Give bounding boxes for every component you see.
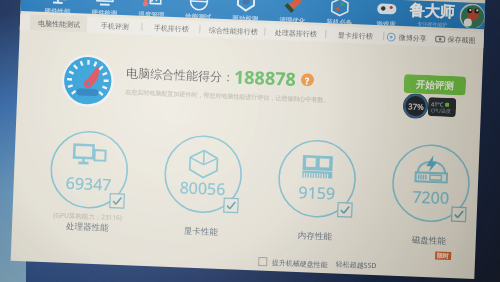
staticText: 内存性能 xyxy=(298,230,332,242)
button[interactable]: 微博分享 xyxy=(387,32,427,43)
staticText: 保存截图 xyxy=(447,35,476,45)
button[interactable]: 69347 xyxy=(45,129,132,252)
button[interactable]: CPU 使用率 37% xyxy=(403,93,429,119)
staticText: 7200 xyxy=(412,185,450,209)
button[interactable]: 处理器排行榜 xyxy=(265,24,326,42)
staticText: 硬件性能 xyxy=(44,7,71,13)
staticText: 驱动检测 xyxy=(232,14,258,20)
button[interactable]: 9159 xyxy=(273,138,360,261)
staticText: 处理器性能 xyxy=(66,221,109,234)
staticText: 轻松超越SSD xyxy=(335,260,377,271)
button[interactable]: 驱动检测 xyxy=(221,0,269,21)
button[interactable]: 显卡排行榜 xyxy=(326,26,384,44)
staticText: 清理优化 xyxy=(279,16,305,22)
staticText: 电脑性能测试 xyxy=(38,19,80,29)
button[interactable]: 手机排行榜 xyxy=(143,19,200,37)
staticText: 性能测试 xyxy=(185,12,212,18)
staticText: 188878 xyxy=(234,64,296,92)
staticText: 41°C xyxy=(431,100,444,108)
staticText: 37% xyxy=(408,100,424,112)
button[interactable]: 帮助 xyxy=(301,73,314,87)
button[interactable]: 游戏库 xyxy=(362,0,410,26)
staticText: 9159 xyxy=(298,181,336,204)
staticText: ? xyxy=(305,74,310,86)
button[interactable]: 显卡性能 已选中 xyxy=(224,198,238,213)
staticText: (GPU算构能力：23116) xyxy=(53,210,123,222)
staticText: 手机排行榜 xyxy=(154,23,189,34)
staticText: 显卡排行榜 xyxy=(338,30,373,41)
button[interactable]: 鲁大师 xyxy=(409,0,485,29)
button[interactable]: 装机必备 xyxy=(315,0,363,24)
button[interactable]: 清理优化 xyxy=(268,0,316,22)
button[interactable]: 手机评测 xyxy=(87,17,142,35)
staticText: CPU温度 xyxy=(431,107,451,115)
button[interactable]: 保存截图 xyxy=(435,34,476,45)
staticText: 微博分享 xyxy=(399,33,427,43)
staticText: 限时 xyxy=(437,252,449,260)
button[interactable]: 性能测试 xyxy=(174,0,222,19)
button[interactable]: 开始评测 xyxy=(403,74,466,95)
staticText: 磁盘性能 xyxy=(411,234,446,247)
staticText: 提升机械硬盘性能 xyxy=(272,258,328,269)
staticText: 硬件检测 xyxy=(91,9,118,15)
button[interactable]: 处理器性能 已选中 xyxy=(110,194,124,208)
button[interactable]: 电脑性能测试 xyxy=(30,14,87,32)
staticText: 开始评测 xyxy=(416,79,454,92)
button[interactable]: 内存性能 已选中 xyxy=(338,203,352,217)
button[interactable]: 硬件检测 xyxy=(80,0,128,15)
staticText: 显卡性能 xyxy=(184,226,218,238)
staticText: 温度管理 xyxy=(138,11,165,17)
button[interactable]: 综合性能排行榜 xyxy=(201,21,265,40)
button[interactable]: 提升机械硬盘性能 xyxy=(259,256,377,271)
staticText: 69347 xyxy=(65,172,112,196)
button[interactable]: 硬件性能 xyxy=(33,0,81,13)
staticText: 鲁大师 xyxy=(409,1,455,22)
button[interactable]: 41°C xyxy=(428,97,456,117)
staticText: 专注硬件维护 xyxy=(417,21,447,28)
staticText: 装机必备 xyxy=(326,18,352,24)
staticText: 手机评测 xyxy=(101,21,129,31)
staticText: 综合性能排行榜 xyxy=(209,25,258,36)
button[interactable]: 7200 xyxy=(387,143,473,266)
staticText: 80056 xyxy=(179,176,226,200)
button[interactable]: 温度管理 xyxy=(127,0,175,17)
staticText: 游戏库 xyxy=(376,20,396,26)
staticText: 处理器排行榜 xyxy=(275,28,317,39)
staticText: 在您实时电脑配置加硬件时，帮您对电脑性能进行评估，让您做到心中有数。 xyxy=(125,88,329,104)
staticText: 电脑综合性能得分： xyxy=(126,65,234,84)
button[interactable]: 80056 xyxy=(159,134,246,257)
button[interactable]: 磁盘性能 已选中 xyxy=(451,207,466,222)
